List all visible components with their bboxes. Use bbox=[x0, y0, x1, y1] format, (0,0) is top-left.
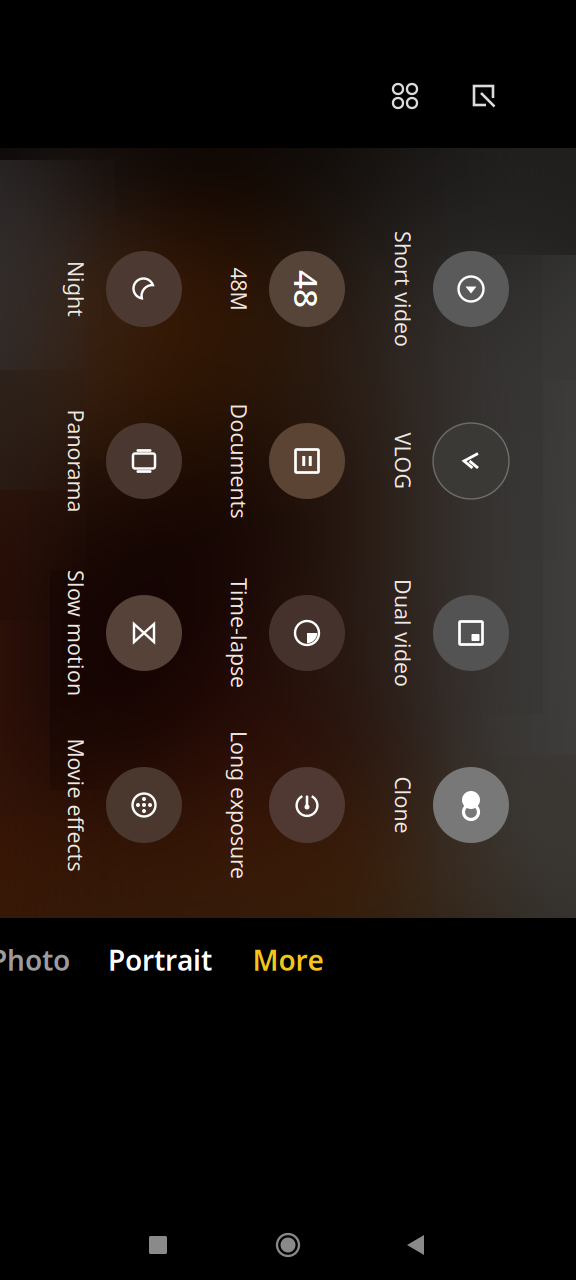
button[interactable] bbox=[433, 767, 509, 843]
staticText: Dual video bbox=[349, 619, 457, 647]
button[interactable] bbox=[269, 423, 345, 499]
staticText: 48M bbox=[217, 275, 260, 303]
button[interactable] bbox=[433, 251, 509, 327]
staticText: Panorama bbox=[24, 447, 127, 475]
button[interactable]: Camera mode grid bbox=[378, 69, 432, 123]
staticText: Documents bbox=[181, 447, 296, 475]
button[interactable] bbox=[106, 251, 182, 327]
staticText: Clone bbox=[374, 791, 431, 819]
button[interactable]: Photo bbox=[0, 941, 70, 979]
button[interactable] bbox=[433, 423, 509, 499]
staticText: Night bbox=[48, 275, 104, 303]
button[interactable]: Home bbox=[253, 1217, 323, 1273]
staticText: More bbox=[252, 941, 323, 979]
staticText: Long exposure bbox=[165, 791, 313, 819]
staticText: Time-lapse bbox=[184, 619, 294, 647]
staticText: Portrait bbox=[108, 941, 212, 979]
button[interactable]: Back bbox=[382, 1217, 452, 1273]
staticText: Slow motion bbox=[13, 619, 139, 647]
staticText: Short video bbox=[345, 275, 461, 303]
button[interactable] bbox=[106, 423, 182, 499]
button[interactable] bbox=[269, 595, 345, 671]
button[interactable] bbox=[269, 767, 345, 843]
button[interactable]: More bbox=[252, 941, 323, 979]
button[interactable] bbox=[106, 767, 182, 843]
staticText: Movie effects bbox=[9, 791, 142, 819]
button[interactable]: 48 bbox=[269, 251, 345, 327]
button[interactable]: Recent apps bbox=[123, 1217, 193, 1273]
button[interactable] bbox=[433, 595, 509, 671]
staticText: Photo bbox=[0, 941, 70, 979]
button[interactable] bbox=[106, 595, 182, 671]
button[interactable]: Portrait bbox=[108, 941, 212, 979]
staticText: 48 bbox=[288, 267, 326, 311]
staticText: VLOG bbox=[374, 447, 431, 475]
button[interactable]: Collapse modes bbox=[457, 69, 511, 123]
